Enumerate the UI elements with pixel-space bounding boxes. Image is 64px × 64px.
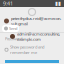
staticText: peter.thydius.reid@acmeconsult.gmail xyxy=(11,16,61,26)
staticText: Send xyxy=(9,26,17,31)
staticText: admin@acmeconsulting.example.com xyxy=(17,31,60,42)
staticText: 9:41 xyxy=(3,0,13,7)
staticText: Show password and remember me xyxy=(10,44,44,55)
staticText: ▮▮ xyxy=(55,0,61,7)
staticText: Password xyxy=(5,36,22,41)
